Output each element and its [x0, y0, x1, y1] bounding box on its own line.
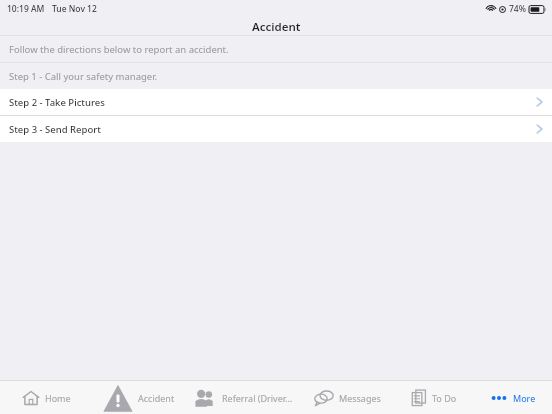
button[interactable]: Messages [301, 381, 394, 414]
staticText: Accident [252, 19, 301, 35]
button[interactable]: To Do [394, 381, 473, 414]
other: Accident [103, 383, 133, 413]
button[interactable]: Accident [92, 381, 185, 414]
staticText: 74% [509, 3, 526, 15]
other: Messages [314, 390, 334, 406]
button[interactable]: Step 3 - Send Report [0, 116, 552, 142]
other: More [490, 393, 508, 403]
staticText: Tue Nov 12 [52, 3, 97, 15]
staticText: To Do [432, 392, 457, 404]
staticText: Referral (Driver... [222, 392, 293, 404]
staticText: Step 1 - Call your safety manager. [9, 70, 158, 83]
staticText: Follow the directions below to report an… [9, 43, 229, 56]
staticText: Step 3 - Send Report [9, 123, 536, 136]
other: To Do [411, 389, 427, 407]
button[interactable]: Step 2 - Take Pictures [0, 89, 552, 115]
staticText: Home [45, 392, 71, 404]
staticText: 10:19 AM [7, 3, 45, 15]
staticText: Accident [138, 392, 175, 404]
staticText: Step 2 - Take Pictures [9, 96, 536, 109]
button[interactable]: Home [0, 381, 92, 414]
button[interactable]: More [473, 381, 552, 414]
button[interactable]: Referral [185, 381, 301, 414]
staticText: Messages [339, 392, 381, 404]
other: Home [22, 389, 40, 407]
staticText: More [513, 392, 536, 404]
other: Referral [193, 389, 217, 407]
